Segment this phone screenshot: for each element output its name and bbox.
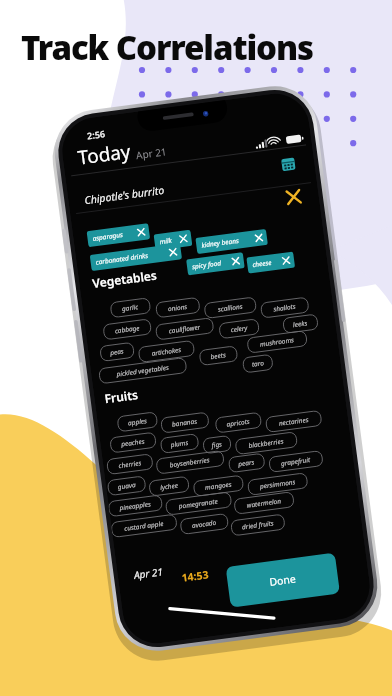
button[interactable]: Track Correlations promo screen xyxy=(0,0,392,696)
